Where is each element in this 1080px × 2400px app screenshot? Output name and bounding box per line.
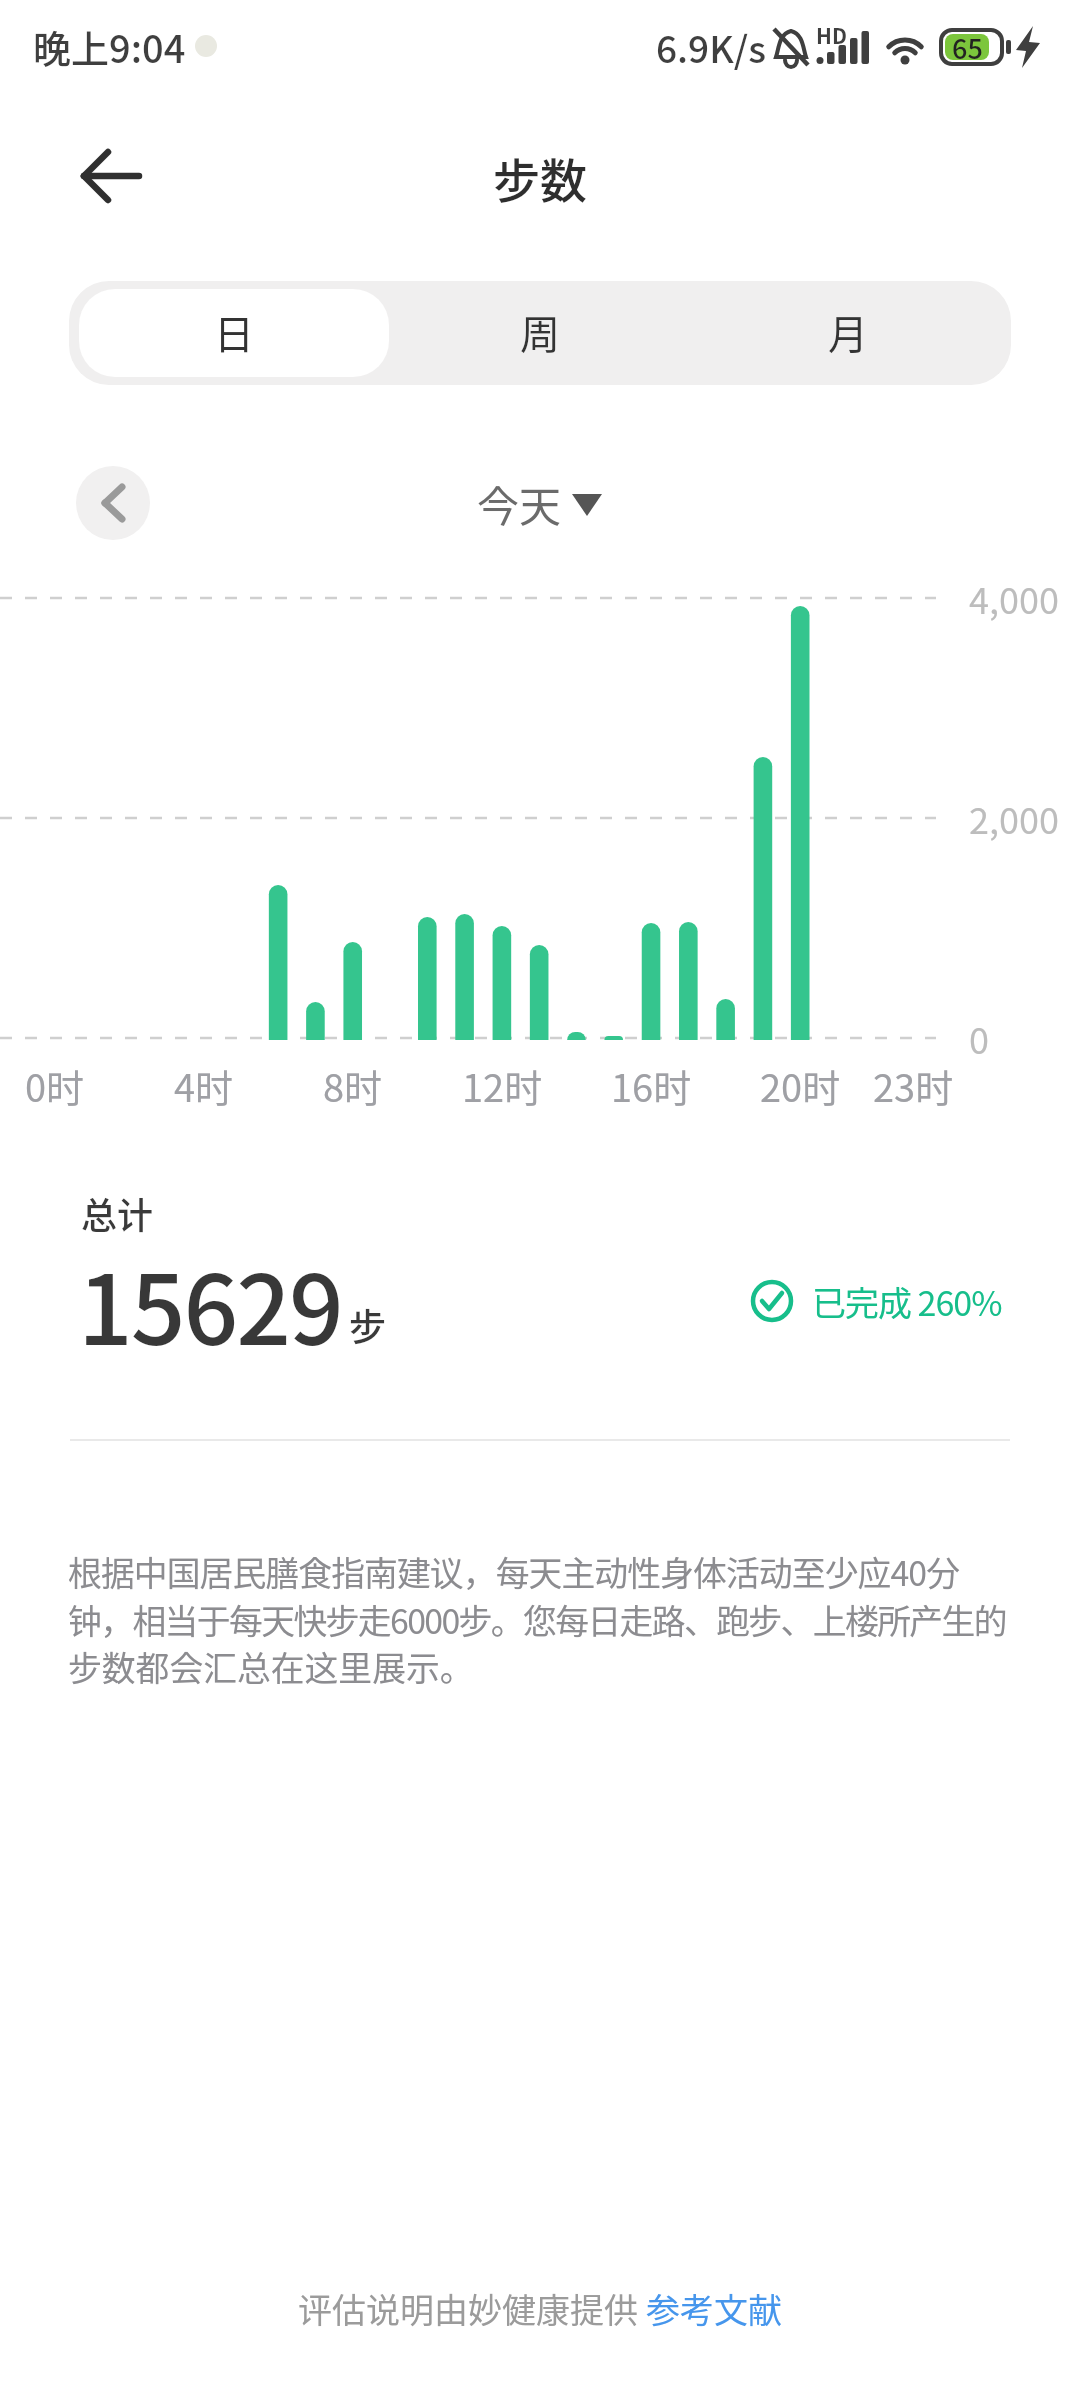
staticText: 20时: [760, 1058, 841, 1113]
staticText: 16时: [611, 1058, 692, 1113]
button[interactable]: 参考文献: [646, 2284, 782, 2333]
staticText: 步数: [493, 143, 587, 211]
staticText: 8时: [323, 1058, 383, 1113]
staticText: 总计: [81, 1187, 154, 1239]
staticText: 6.9K/s: [656, 20, 766, 74]
button[interactable]: [697, 289, 1005, 377]
staticText: HD: [816, 20, 847, 50]
staticText: 65: [952, 28, 983, 67]
staticText: 步数都会汇总在这里展示。: [68, 1642, 474, 1691]
staticText: 4时: [174, 1058, 234, 1113]
button[interactable]: [60, 146, 160, 206]
staticText: 根据中国居民膳食指南建议，每天主动性身体活动至少应40分: [68, 1547, 960, 1596]
button[interactable]: [389, 289, 697, 377]
button[interactable]: [79, 289, 389, 377]
staticText: 晚上9:04: [33, 19, 186, 74]
staticText: 月: [828, 303, 868, 361]
staticText: 评估说明由妙健康提供: [298, 2284, 646, 2333]
button[interactable]: [76, 466, 150, 540]
staticText: 4,000: [969, 572, 1059, 624]
staticText: 12时: [462, 1058, 543, 1113]
staticText: 周: [520, 303, 560, 361]
button[interactable]: 今天: [477, 473, 562, 534]
staticText: 0时: [25, 1058, 85, 1113]
staticText: 日: [214, 303, 254, 361]
staticText: 2,000: [969, 792, 1059, 844]
staticText: 钟，相当于每天快步走6000步。您每日走路、跑步、上楼所产生的: [68, 1595, 1006, 1644]
staticText: 0: [969, 1012, 989, 1064]
staticText: 已完成 260%: [812, 1277, 1002, 1326]
staticText: 15629: [78, 1234, 342, 1373]
staticText: 步: [349, 1298, 386, 1352]
staticText: 23时: [873, 1058, 954, 1113]
